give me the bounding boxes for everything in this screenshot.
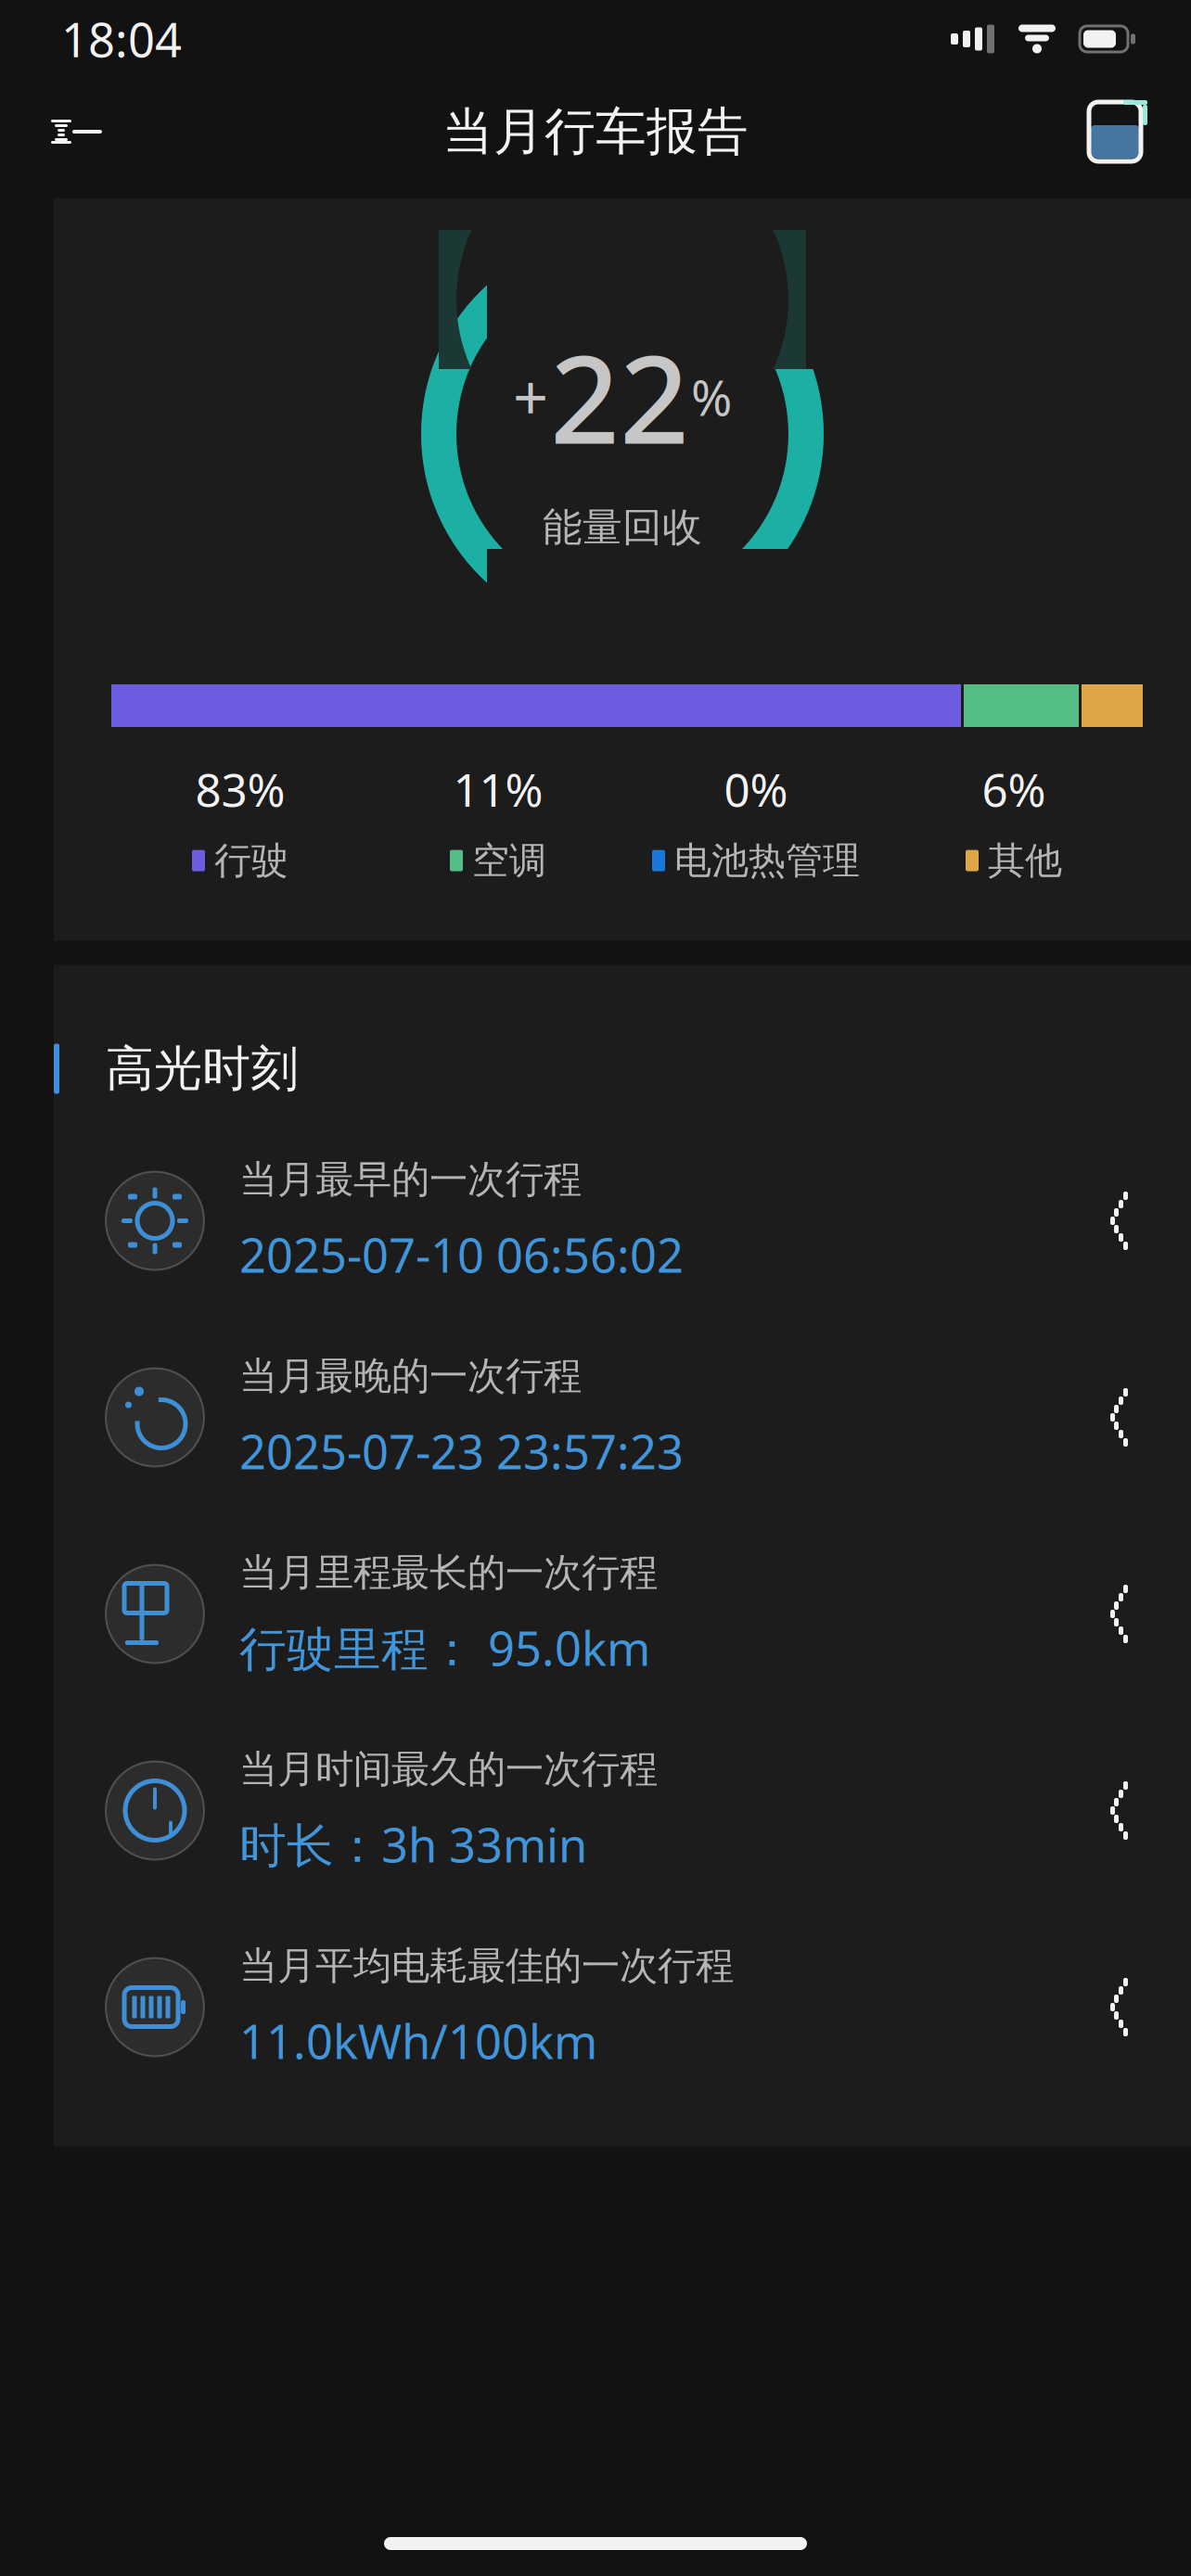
staticText: 能量回收 — [543, 503, 702, 552]
staticText: 18:04 — [61, 8, 182, 70]
staticText: 6% — [982, 759, 1046, 819]
staticText: 当月时间最久的一次行程 — [239, 1746, 658, 1793]
button[interactable]: 返回 — [32, 87, 121, 176]
button[interactable]: 分享 — [1070, 87, 1159, 176]
staticText: 2025-07-23 23:57:23 — [239, 1420, 684, 1482]
staticText: 电池热管理 — [674, 838, 860, 883]
staticText: 空调 — [472, 838, 546, 883]
staticText: 行驶 — [214, 838, 288, 883]
staticText: 当月平均电耗最佳的一次行程 — [239, 1942, 734, 1989]
staticText: 11% — [453, 759, 543, 819]
staticText: 2025-07-10 06:56:02 — [239, 1223, 684, 1286]
button[interactable]: 当月里程最长的一次行程 — [54, 1516, 1191, 1712]
staticText: % — [691, 364, 732, 430]
staticText: 时长：3h 33min — [239, 1813, 587, 1876]
button[interactable]: 当月时间最久的一次行程 — [54, 1712, 1191, 1909]
staticText: 当月最早的一次行程 — [239, 1156, 582, 1203]
staticText: 高光时刻 — [106, 1039, 299, 1098]
staticText: 行驶里程： 95.0km — [239, 1617, 650, 1679]
staticText: 22 — [550, 316, 689, 477]
staticText: 当月里程最长的一次行程 — [239, 1549, 658, 1596]
button[interactable]: 当月最早的一次行程 — [54, 1122, 1191, 1319]
staticText: 其他 — [988, 838, 1062, 883]
staticText: 11.0kWh/100km — [239, 2010, 597, 2072]
button[interactable]: 当月平均电耗最佳的一次行程 — [54, 1909, 1191, 2105]
staticText: + — [513, 356, 548, 438]
staticText: 0% — [724, 759, 788, 819]
button[interactable]: 当月最晚的一次行程 — [54, 1319, 1191, 1516]
staticText: 当月最晚的一次行程 — [239, 1352, 582, 1400]
staticText: 当月行车报告 — [442, 101, 749, 163]
staticText: 83% — [195, 759, 285, 819]
